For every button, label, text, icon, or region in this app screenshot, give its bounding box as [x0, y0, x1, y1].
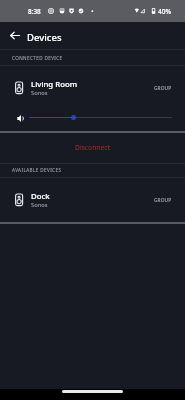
staticText: Disconnect — [75, 143, 110, 152]
staticText: 40% — [158, 7, 172, 16]
staticText: Devices — [27, 31, 62, 44]
staticText: Living Room — [31, 79, 78, 90]
button[interactable]: Living Room — [0, 70, 185, 106]
staticText: CONNECTED DEVICE — [12, 55, 63, 61]
staticText: GROUP — [154, 197, 172, 204]
staticText: AVAILABLE DEVICES — [12, 167, 62, 173]
button[interactable]: Dock — [0, 182, 185, 218]
button[interactable]: GROUP — [152, 78, 174, 98]
staticText: Sonos — [31, 89, 48, 97]
staticText: 8:38 — [28, 7, 41, 16]
staticText: Sonos — [31, 201, 48, 209]
staticText: GROUP — [154, 85, 172, 92]
button[interactable]: Disconnect — [0, 133, 185, 163]
button[interactable]: Back — [3, 22, 27, 49]
button[interactable]: GROUP — [152, 190, 174, 210]
staticText: Dock — [31, 191, 50, 202]
